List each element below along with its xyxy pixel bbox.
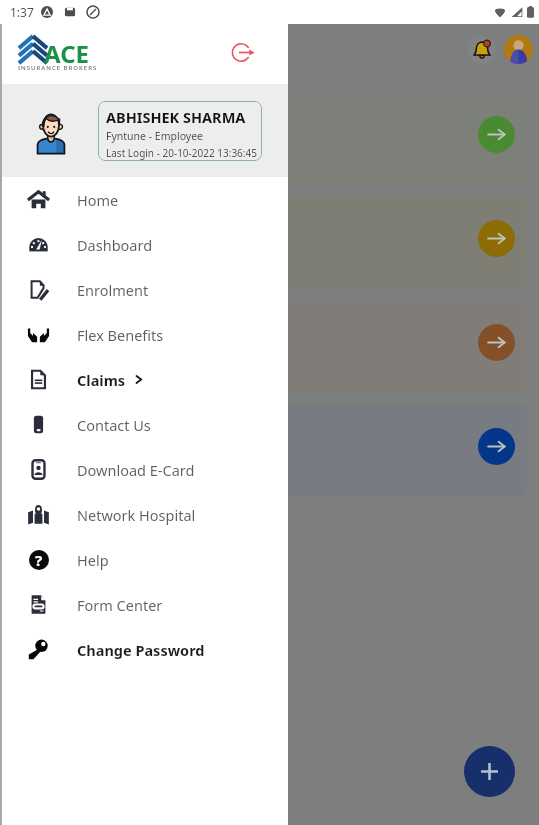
staticText: Enrolment bbox=[77, 280, 149, 300]
button[interactable]: Open bbox=[478, 116, 515, 153]
button[interactable]: Download E-Card bbox=[0, 447, 288, 492]
button[interactable]: Open bbox=[478, 428, 515, 465]
button[interactable]: Open bbox=[10, 404, 527, 496]
button[interactable]: Form Center bbox=[0, 582, 288, 627]
staticText: ? bbox=[35, 550, 43, 570]
staticText: Dashboard bbox=[77, 235, 153, 255]
staticText: Download E-Card bbox=[77, 460, 195, 480]
staticText: Claims bbox=[77, 370, 126, 390]
staticText: Network Hospital bbox=[77, 505, 196, 525]
staticText: Help bbox=[77, 550, 109, 570]
button[interactable]: Claims bbox=[0, 357, 288, 402]
staticText: ABHISHEK SHARMA bbox=[106, 107, 246, 127]
staticText: ACE bbox=[44, 37, 89, 70]
staticText: INSURANCE BROKERS bbox=[18, 64, 98, 72]
button[interactable]: Add bbox=[464, 746, 515, 797]
button[interactable]: Open bbox=[478, 220, 515, 257]
button[interactable]: Enrolment bbox=[0, 267, 288, 312]
staticText: Form Center bbox=[77, 595, 163, 615]
button[interactable]: Network Hospital bbox=[0, 492, 288, 537]
button[interactable]: Flex Benefits bbox=[0, 312, 288, 357]
staticText: Home bbox=[77, 190, 119, 210]
button[interactable]: ABHISHEK SHARMA bbox=[98, 101, 262, 161]
button[interactable]: ? bbox=[0, 537, 288, 582]
button[interactable]: Open bbox=[10, 196, 527, 288]
button[interactable]: Logout bbox=[226, 35, 260, 69]
button[interactable]: Home bbox=[0, 177, 288, 222]
button[interactable]: Open bbox=[478, 324, 515, 361]
staticText: Flex Benefits bbox=[77, 325, 164, 345]
staticText: Change Password bbox=[77, 640, 205, 660]
staticText: Last Login - 20-10-2022 13:36:45 bbox=[106, 146, 257, 160]
button[interactable]: Open bbox=[10, 92, 527, 184]
button[interactable]: Change Password bbox=[0, 627, 288, 672]
button[interactable]: Open bbox=[10, 300, 527, 392]
button[interactable]: Notifications bbox=[468, 36, 496, 64]
staticText: Fyntune - Employee bbox=[106, 129, 203, 143]
button[interactable]: Contact Us bbox=[0, 402, 288, 447]
staticText: Contact Us bbox=[77, 415, 151, 435]
button[interactable]: Dashboard bbox=[0, 222, 288, 267]
button[interactable]: Profile bbox=[504, 35, 533, 64]
staticText: 1:37 bbox=[10, 4, 34, 20]
